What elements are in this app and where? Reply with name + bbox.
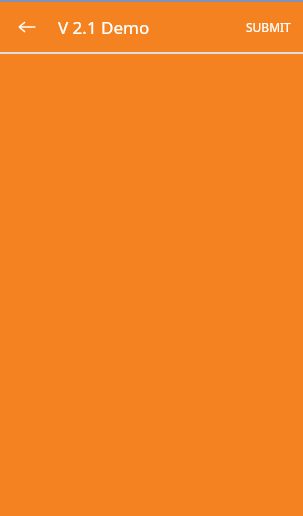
staticText: V 2.1 Demo — [58, 16, 150, 39]
staticText: SUBMIT — [246, 19, 291, 35]
button[interactable]: Back — [10, 10, 44, 44]
button[interactable]: SUBMIT — [234, 9, 303, 45]
